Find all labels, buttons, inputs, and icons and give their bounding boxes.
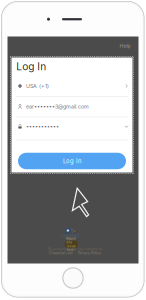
button[interactable]: Chemical.com · Privacy Policy <box>40 251 110 255</box>
staticText: Chemical.com · Privacy Policy <box>49 251 101 255</box>
staticText: By using this app, you consent to <box>48 247 102 251</box>
staticText: Help <box>119 43 130 49</box>
staticText: ••••••••••• <box>26 123 59 130</box>
button[interactable]: Report any <box>65 241 77 248</box>
staticText: USA (+1) <box>26 83 49 89</box>
staticText: Report any <box>66 237 76 244</box>
button[interactable]: Help <box>118 42 132 50</box>
staticText: Log In <box>16 60 46 73</box>
button[interactable]: ear•••••••3@gmail.com <box>0 0 146 300</box>
staticText: support <box>61 232 80 239</box>
button[interactable]: USA (+1) <box>0 0 146 300</box>
staticText: Log In <box>63 157 81 165</box>
staticText: ear•••••••3@gmail.com <box>26 103 89 110</box>
staticText: issue here <box>67 244 76 252</box>
button[interactable]: ••••••••••• <box>0 0 146 300</box>
button[interactable]: Log In <box>18 153 126 169</box>
